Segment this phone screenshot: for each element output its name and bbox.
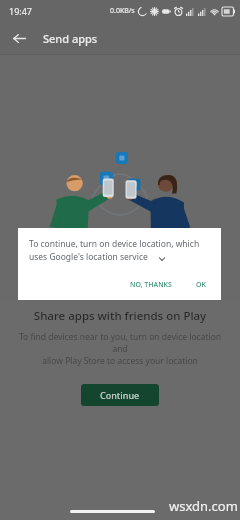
button[interactable]: OK — [191, 277, 211, 293]
staticText: 19:47 — [9, 5, 33, 17]
staticText: To find devices near to you, turn on dev… — [14, 331, 226, 367]
staticText: Share apps with friends on Play — [0, 308, 240, 324]
staticText: Continue — [100, 389, 140, 401]
staticText: 0.0KB/s — [110, 6, 135, 16]
staticText: NO, THANKS — [130, 280, 172, 290]
button[interactable]: NO, THANKS — [125, 277, 177, 293]
button[interactable]: Expand details — [157, 254, 167, 264]
staticText: OK — [196, 280, 206, 290]
staticText: Send apps — [43, 31, 98, 46]
button[interactable]: Continue — [81, 384, 159, 406]
staticText: wsxdn.com — [169, 497, 238, 515]
button[interactable]: Back — [8, 27, 30, 49]
staticText: To continue, turn on device location, wh… — [29, 238, 200, 263]
